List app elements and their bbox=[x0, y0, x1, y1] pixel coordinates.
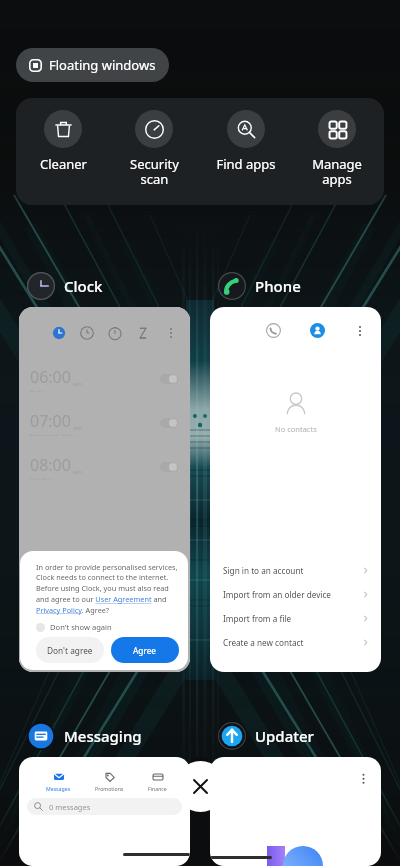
button[interactable]: Updater bbox=[218, 722, 314, 750]
button[interactable]: Import from a file bbox=[210, 606, 381, 630]
staticText: Manage apps bbox=[312, 155, 362, 188]
button[interactable]: Floating windows bbox=[16, 48, 169, 82]
button[interactable]: Finance bbox=[148, 772, 167, 792]
staticText: Don't agree bbox=[47, 645, 93, 656]
staticText: Security scan bbox=[130, 155, 179, 188]
button[interactable]: 0 messages bbox=[27, 798, 182, 815]
staticText: Cleaner bbox=[40, 155, 87, 173]
staticText: am bbox=[73, 424, 82, 432]
button[interactable]: Import from an older device bbox=[210, 582, 381, 606]
staticText: 06:00 bbox=[30, 366, 71, 388]
staticText: Import from a file bbox=[223, 613, 292, 624]
button[interactable]: Security scan bbox=[110, 98, 198, 188]
button[interactable]: 07:00 bbox=[19, 410, 190, 436]
staticText: Clock bbox=[64, 276, 103, 296]
button[interactable]: Agree bbox=[111, 637, 179, 663]
button[interactable]: Messaging bbox=[27, 722, 142, 750]
staticText: Messages bbox=[46, 785, 71, 792]
button[interactable]: Don't show again bbox=[36, 622, 112, 632]
staticText: Floating windows bbox=[49, 56, 156, 74]
staticText: Find apps bbox=[216, 155, 276, 173]
button[interactable] bbox=[210, 757, 381, 866]
button[interactable]: Don't agree bbox=[36, 637, 104, 663]
staticText: Morning is Mine bbox=[30, 432, 76, 436]
button[interactable]: No contacts bbox=[210, 307, 381, 672]
button[interactable]: 08:00 bbox=[19, 454, 190, 480]
button[interactable]: Close bbox=[175, 761, 226, 812]
button[interactable]: Messages bbox=[46, 772, 71, 792]
button[interactable]: Clock bbox=[27, 272, 103, 300]
staticText: 08:00 bbox=[30, 454, 71, 476]
staticText: am bbox=[73, 380, 82, 388]
button[interactable]: Sign in to an account bbox=[210, 558, 381, 582]
button[interactable]: 06:00 bbox=[19, 366, 190, 392]
staticText: Import from an older device bbox=[223, 589, 331, 600]
staticText: am bbox=[73, 468, 82, 476]
staticText: Sign in to an account bbox=[223, 565, 304, 576]
button[interactable]: Manage apps bbox=[293, 98, 381, 188]
button[interactable]: Messages bbox=[19, 757, 190, 866]
staticText: Get Rea bbox=[30, 476, 52, 480]
staticText: Promotions bbox=[95, 785, 124, 792]
button[interactable]: Find apps bbox=[202, 98, 290, 173]
staticText: In order to provide personalised service… bbox=[36, 562, 179, 615]
staticText: Create a new contact bbox=[223, 637, 304, 648]
button[interactable]: Promotions bbox=[95, 772, 124, 792]
staticText: 07:00 bbox=[30, 410, 71, 432]
staticText: Messaging bbox=[64, 726, 142, 746]
staticText: Agree bbox=[133, 645, 157, 656]
staticText: Finance bbox=[148, 785, 167, 792]
button[interactable]: 06:00 bbox=[19, 307, 190, 672]
button[interactable]: Cleaner bbox=[19, 98, 107, 173]
button[interactable]: Phone bbox=[218, 272, 301, 300]
staticText: Phone bbox=[255, 276, 301, 296]
staticText: Busy bbox=[30, 388, 44, 392]
staticText: No contacts bbox=[275, 424, 317, 434]
staticText: Updater bbox=[255, 726, 314, 746]
staticText: 0 messages bbox=[49, 802, 91, 812]
staticText: Don't show again bbox=[50, 622, 112, 632]
button[interactable]: Create a new contact bbox=[210, 630, 381, 654]
